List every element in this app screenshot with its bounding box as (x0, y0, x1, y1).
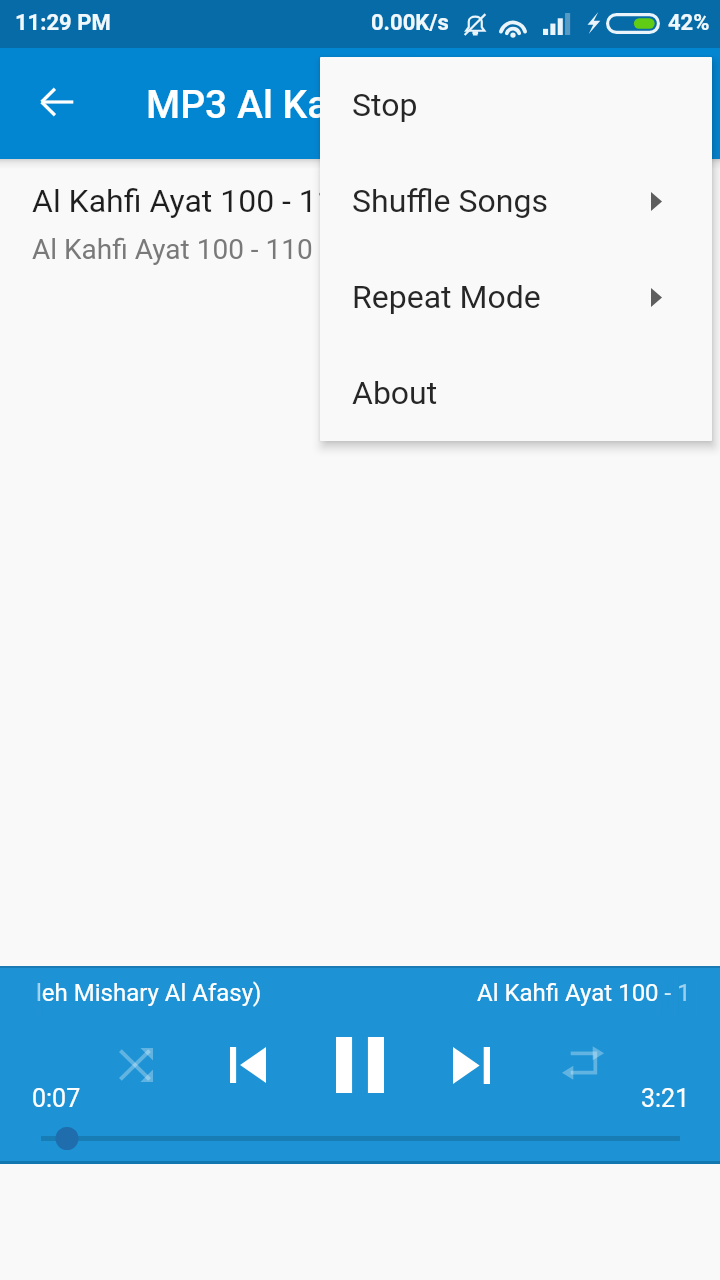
staticText: Al Kahfi Ayat 100 - 110 (32, 182, 353, 220)
button[interactable]: Al Kahfi Ayat 100 - 110 (0, 156, 720, 272)
staticText: Al Kahfi Ayat 100 - 1 (477, 979, 691, 1007)
staticText: Stop (352, 86, 418, 124)
button[interactable]: Repeat Mode (320, 249, 712, 345)
button[interactable]: Repeat (561, 1041, 605, 1085)
staticText: 11:29 PM (15, 10, 111, 36)
button[interactable]: Next (453, 1047, 490, 1084)
staticText: 0.00K/s (371, 10, 449, 36)
staticText: About (352, 374, 438, 412)
button[interactable]: Pause (336, 1037, 384, 1093)
staticText: 0:07 (32, 1084, 81, 1113)
staticText: 3:21 (641, 1084, 690, 1113)
staticText: Al Kahfi Ayat 100 - 110 (Sheikh Mishary … (32, 233, 639, 266)
button[interactable]: About (320, 345, 712, 441)
button[interactable]: Shuffle (119, 1048, 153, 1082)
staticText: 42% (668, 10, 710, 36)
staticText: leh Mishary Al Afasy) (36, 979, 262, 1007)
button[interactable]: Previous (230, 1047, 266, 1083)
staticText: Shuffle Songs (352, 182, 548, 220)
button[interactable]: Back (25, 70, 89, 134)
staticText: MP3 Al Kahfi Offline (146, 82, 497, 128)
button[interactable]: Shuffle Songs (320, 153, 712, 249)
staticText: Repeat Mode (352, 278, 541, 316)
button[interactable]: Stop (320, 57, 712, 153)
